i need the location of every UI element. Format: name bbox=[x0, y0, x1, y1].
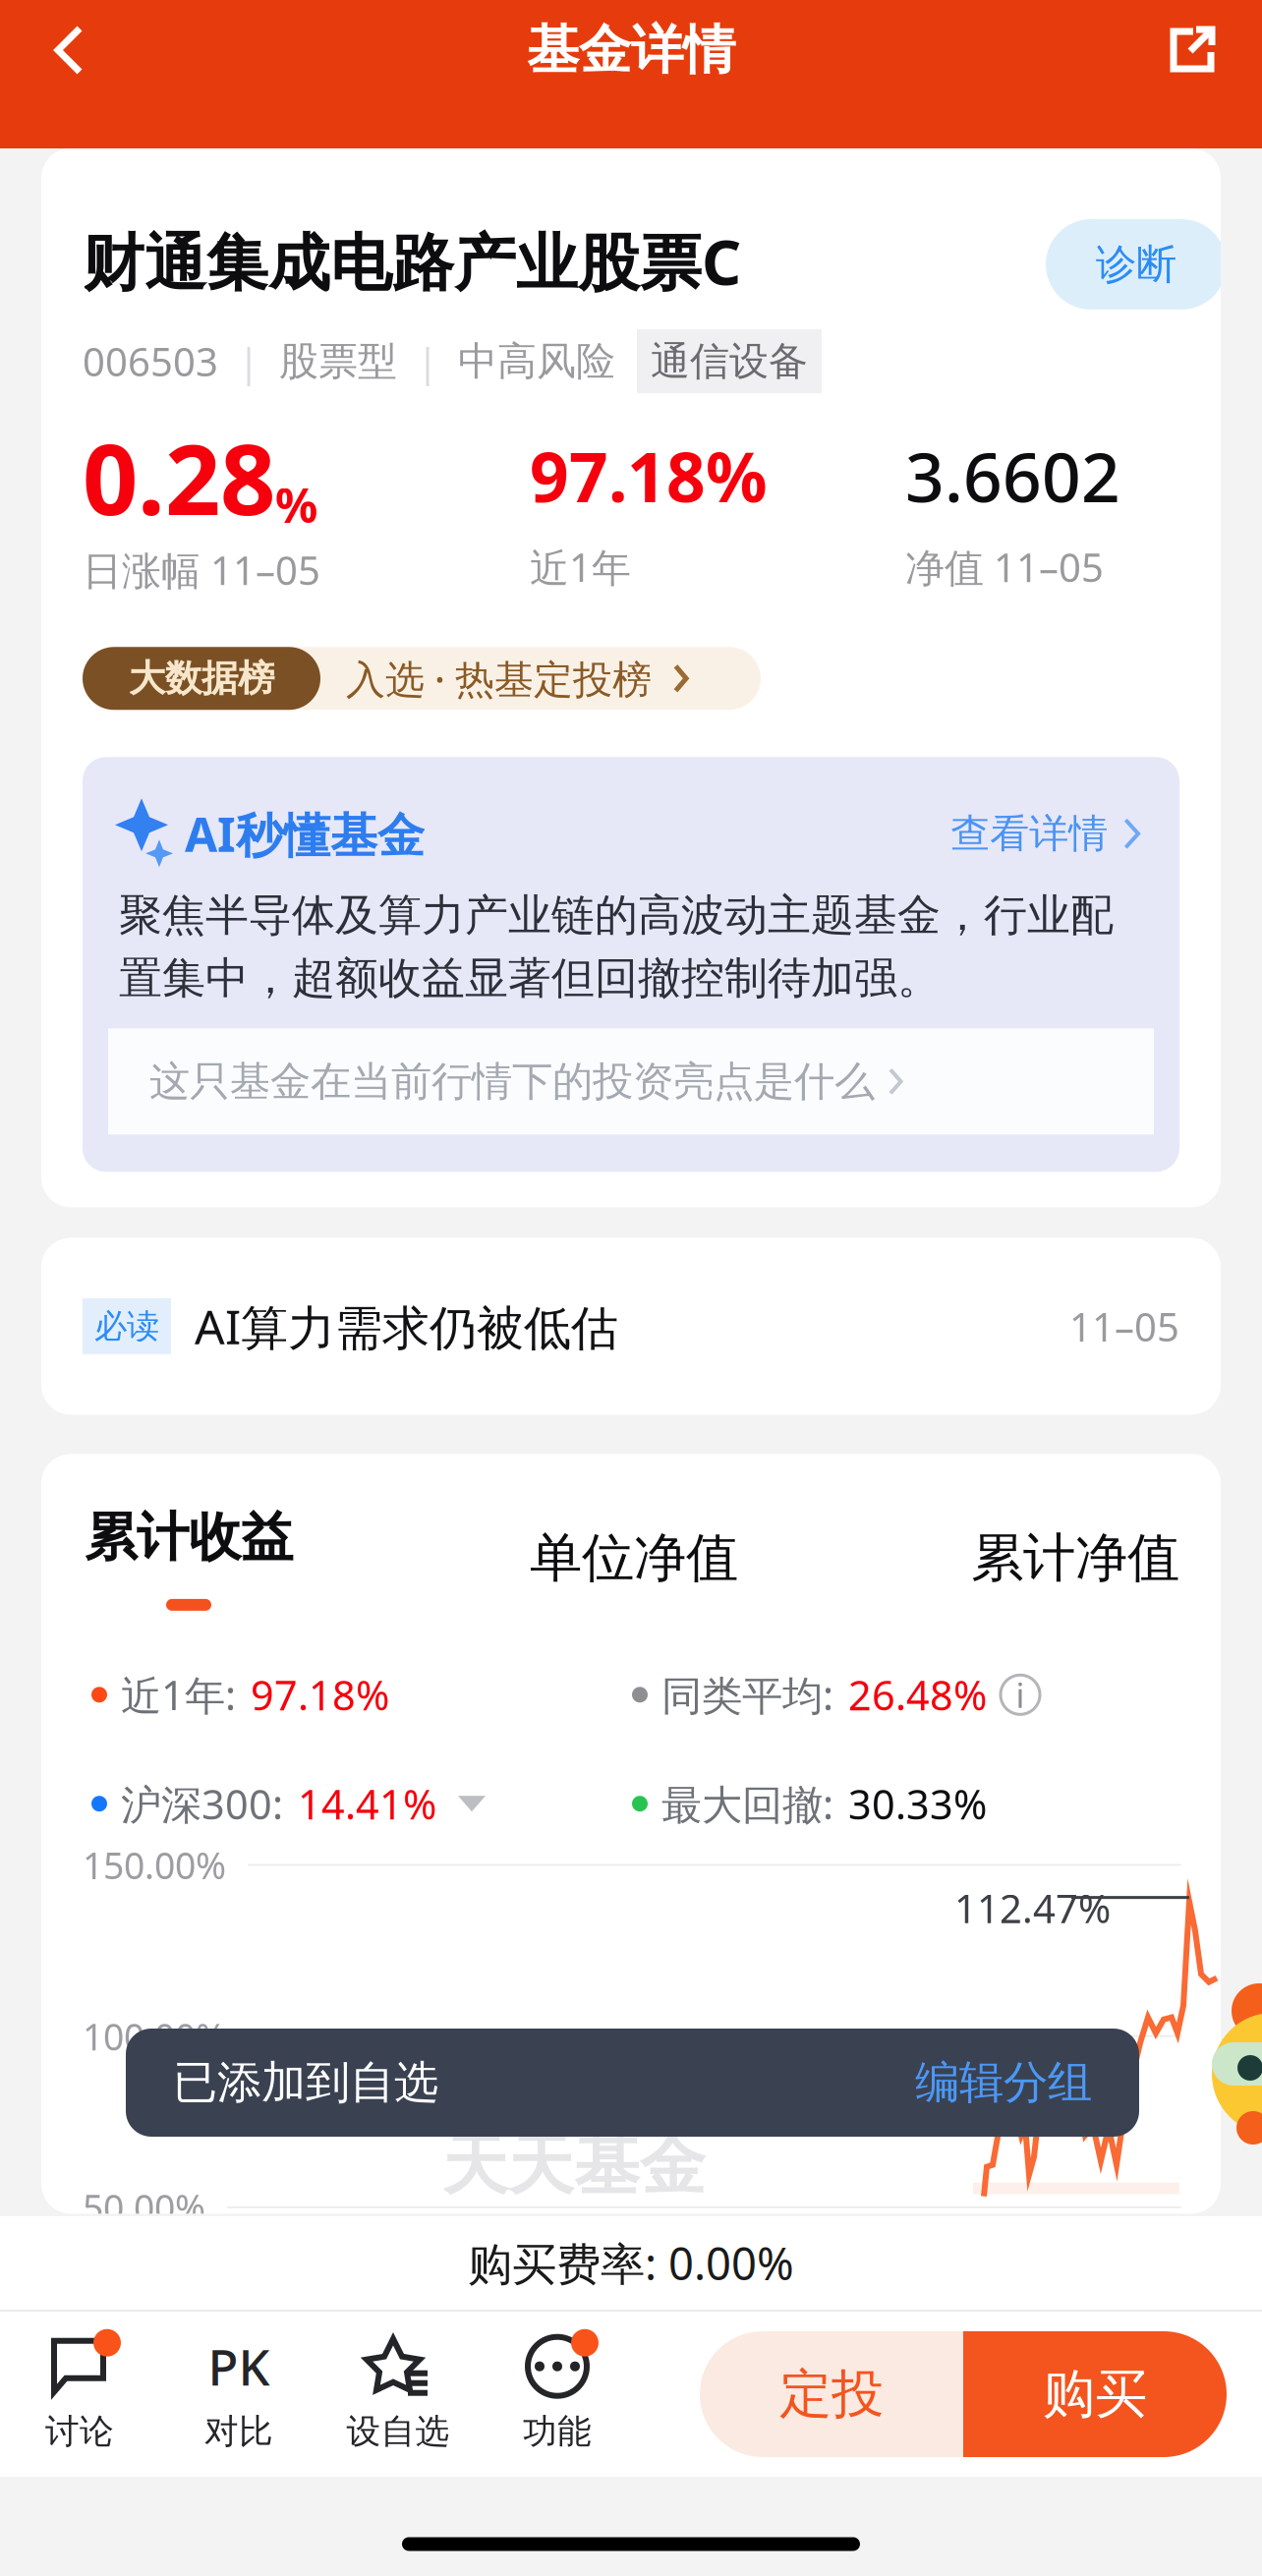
staticText: % bbox=[275, 473, 317, 536]
staticText: 购买费率: 0.00% bbox=[468, 2233, 794, 2293]
staticText: 单位净值 bbox=[530, 1526, 738, 1590]
button[interactable]: 大数据榜 bbox=[83, 647, 761, 710]
staticText: 中高风险 bbox=[458, 337, 615, 385]
button[interactable]: 累计净值 bbox=[971, 1526, 1179, 1590]
staticText: 已添加到自选 bbox=[173, 2055, 438, 2110]
staticText: 这只基金在当前行情下的投资亮点是什么 bbox=[149, 1057, 875, 1106]
staticText: PK bbox=[208, 2333, 270, 2399]
button[interactable]: Share bbox=[1124, 0, 1262, 100]
staticText: 讨论 bbox=[45, 2411, 114, 2452]
staticText: 沪深300: bbox=[121, 1777, 294, 1831]
button[interactable]: 定投 bbox=[700, 2331, 963, 2457]
staticText: 150.00% bbox=[83, 1840, 226, 1889]
button[interactable]: 查看详情 bbox=[951, 810, 1179, 858]
button[interactable]: 购买 bbox=[963, 2331, 1227, 2457]
staticText: 置集中，超额收益显著但回撤控制待加强。 bbox=[119, 952, 941, 1005]
staticText: 大数据榜 bbox=[129, 656, 274, 701]
staticText: 购买 bbox=[1043, 2362, 1147, 2426]
staticText: | bbox=[417, 335, 438, 387]
staticText: 最大回撤: bbox=[661, 1777, 844, 1831]
staticText: 11–05 bbox=[1069, 1300, 1179, 1352]
staticText: 0.28 bbox=[83, 413, 275, 542]
staticText: 基金详情 bbox=[527, 18, 735, 82]
staticText: 查看详情 bbox=[951, 810, 1108, 858]
button[interactable]: PK bbox=[159, 2336, 318, 2452]
staticText: 近1年 bbox=[530, 541, 631, 593]
staticText: 聚焦半导体及算力产业链的高波动主题基金，行业配 bbox=[119, 889, 1114, 942]
staticText: 设自选 bbox=[346, 2411, 450, 2452]
staticText: 100.00% bbox=[83, 2012, 226, 2061]
button[interactable]: 功能 bbox=[478, 2336, 637, 2452]
staticText: AI秒懂基金 bbox=[185, 802, 425, 865]
button[interactable]: 讨论 bbox=[0, 2336, 159, 2452]
staticText: 50.00% bbox=[83, 2183, 205, 2232]
staticText: AI算力需求仍被低估 bbox=[195, 1295, 618, 1358]
staticText: 累计收益 bbox=[85, 1505, 293, 1569]
staticText: 天天基金 bbox=[442, 2125, 706, 2206]
staticText: 97.18% bbox=[251, 1668, 389, 1722]
staticText: 累计净值 bbox=[971, 1526, 1179, 1590]
staticText: | bbox=[238, 335, 259, 387]
button[interactable]: 累计收益 bbox=[85, 1505, 293, 1611]
staticText: 97.18% bbox=[530, 431, 768, 521]
staticText: 诊断 bbox=[1096, 239, 1176, 289]
staticText: 112.47% bbox=[954, 1882, 1111, 1934]
staticText: i bbox=[1016, 1672, 1025, 1717]
staticText: 日涨幅 11–05 bbox=[83, 544, 320, 596]
staticText: 同类平均: bbox=[661, 1668, 844, 1722]
staticText: 26.48% bbox=[848, 1668, 987, 1722]
staticText: 3.6602 bbox=[905, 431, 1120, 521]
staticText: 定投 bbox=[779, 2362, 884, 2426]
button[interactable]: 必读 bbox=[41, 1238, 1221, 1415]
staticText: 通信设备 bbox=[651, 337, 808, 385]
button[interactable]: 这只基金在当前行情下的投资亮点是什么 bbox=[108, 1028, 1154, 1135]
button[interactable]: 编辑分组 bbox=[915, 2055, 1092, 2110]
staticText: 14.41% bbox=[298, 1777, 436, 1831]
staticText: 净值 11–05 bbox=[905, 541, 1104, 593]
staticText: 006503 bbox=[83, 335, 218, 387]
staticText: 必读 bbox=[94, 1306, 159, 1346]
staticText: 财通集成电路产业股票C bbox=[83, 220, 741, 302]
button[interactable]: 诊断 bbox=[1046, 219, 1227, 310]
staticText: 功能 bbox=[523, 2411, 592, 2452]
button[interactable]: 单位净值 bbox=[530, 1526, 738, 1590]
staticText: 编辑分组 bbox=[915, 2055, 1092, 2110]
button[interactable]: Back bbox=[0, 0, 138, 100]
button[interactable]: 设自选 bbox=[318, 2336, 478, 2452]
staticText: 股票型 bbox=[279, 337, 397, 385]
staticText: 近1年: bbox=[121, 1668, 247, 1722]
staticText: 入选 · 热基定投榜 bbox=[346, 652, 652, 704]
staticText: 30.33% bbox=[848, 1777, 987, 1831]
staticText: 对比 bbox=[204, 2411, 273, 2452]
